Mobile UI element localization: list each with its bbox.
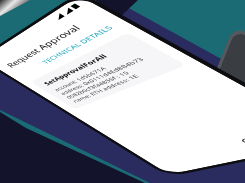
button[interactable]: TECHNICAL DETAILS — [21, 67, 169, 82]
staticText: account: 1d5b671A — [29, 127, 110, 139]
staticText: SetApprovalForAll — [29, 106, 128, 121]
staticText: 0582b0cf3fa4855f : 15 — [29, 151, 123, 163]
staticText: address: 0x0111d4Ed8B4b73 — [29, 139, 151, 151]
staticText: TECHNICAL DETAILS — [63, 67, 169, 82]
staticText: Request Approval — [21, 37, 145, 57]
staticText: name: ETH address: 1E — [29, 163, 126, 175]
